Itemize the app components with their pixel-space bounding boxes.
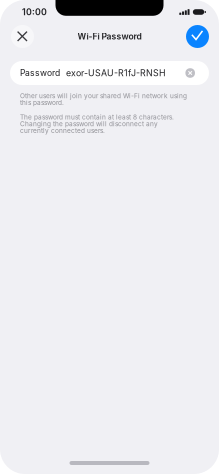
staticText: Other users will join your shared Wi-Fi … [20,92,187,107]
staticText: 10:00 [22,7,47,17]
button[interactable]: Done [186,25,209,48]
staticText: The password must contain at least 8 cha… [20,113,174,135]
button[interactable]: Close [11,25,34,48]
staticText: Wi-Fi Password [77,31,141,42]
button[interactable]: Clear text [185,68,195,78]
staticText: Password [20,68,60,78]
staticText: exor-USAU-R1fJ-RNSH [66,68,166,78]
